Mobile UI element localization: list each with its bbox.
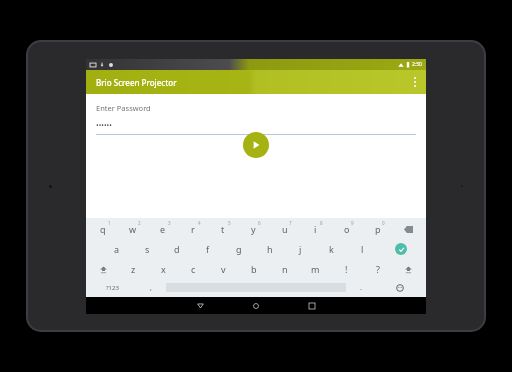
staticText: !	[345, 263, 348, 275]
staticText: a	[114, 243, 120, 255]
staticText: 9	[351, 220, 354, 226]
button[interactable]: ?123	[88, 279, 136, 296]
staticText: 3	[168, 220, 171, 226]
staticText: .	[360, 283, 362, 293]
staticText: f	[206, 243, 210, 255]
staticText: ?123	[106, 284, 119, 292]
staticText: u	[282, 223, 288, 235]
staticText: ,	[150, 283, 152, 293]
button[interactable]: Back	[172, 297, 228, 314]
button[interactable]: f	[192, 239, 223, 259]
staticText: d	[174, 243, 180, 255]
button[interactable]: s	[132, 239, 162, 259]
staticText: 2:50	[412, 61, 422, 68]
button[interactable]: o	[331, 219, 362, 239]
button[interactable]: ?	[362, 259, 393, 279]
button[interactable]: l	[347, 239, 378, 259]
button[interactable]: v	[208, 259, 238, 279]
staticText: b	[251, 263, 257, 275]
button[interactable]: More options	[404, 70, 426, 94]
button[interactable]: ,	[136, 279, 166, 296]
button[interactable]: Shift	[393, 259, 424, 279]
staticText: n	[282, 263, 288, 275]
staticText: l	[361, 243, 364, 255]
staticText: m	[311, 263, 320, 275]
staticText: Enter Password	[96, 103, 151, 113]
button[interactable]: Emoji	[376, 279, 424, 296]
staticText: r	[191, 223, 195, 235]
button[interactable]: b	[238, 259, 269, 279]
staticText: j	[299, 243, 302, 255]
staticText: k	[329, 243, 334, 255]
staticText: y	[251, 223, 256, 235]
button[interactable]: r	[178, 219, 208, 239]
button[interactable]: j	[285, 239, 316, 259]
staticText: 8	[320, 220, 323, 226]
button[interactable]: m	[300, 259, 331, 279]
staticText: e	[160, 223, 166, 235]
staticText: t	[221, 223, 225, 235]
staticText: 1	[108, 220, 111, 226]
staticText: q	[100, 223, 106, 235]
button[interactable]: p	[362, 219, 393, 239]
button[interactable]: u	[269, 219, 300, 239]
staticText: ••••••	[96, 121, 112, 131]
button[interactable]: w	[118, 219, 148, 239]
staticText: 2	[138, 220, 141, 226]
staticText: 5	[228, 220, 231, 226]
staticText: Brio Screen Projector	[96, 77, 177, 88]
staticText: v	[221, 263, 226, 275]
button[interactable]: a	[102, 239, 132, 259]
staticText: ?	[376, 263, 380, 275]
button[interactable]: d	[162, 239, 192, 259]
staticText: x	[161, 263, 166, 275]
button[interactable]: Home	[228, 297, 284, 314]
button[interactable]: x	[148, 259, 178, 279]
button[interactable]: t	[208, 219, 238, 239]
button[interactable]: c	[178, 259, 208, 279]
staticText: s	[145, 243, 150, 255]
staticText: 7	[289, 220, 292, 226]
button[interactable]: i	[300, 219, 331, 239]
button[interactable]: ••••••	[96, 121, 416, 131]
button[interactable]: e	[148, 219, 178, 239]
button[interactable]: q	[88, 219, 118, 239]
button[interactable]: Recent apps	[284, 297, 340, 314]
staticText: 4	[198, 220, 201, 226]
staticText: g	[236, 243, 242, 255]
staticText: w	[129, 223, 137, 235]
staticText: z	[131, 263, 136, 275]
button[interactable]: Shift	[88, 259, 118, 279]
button[interactable]: Enter	[378, 239, 424, 259]
button[interactable]: Start projection	[243, 132, 269, 158]
staticText: i	[314, 223, 317, 235]
staticText: 0	[382, 220, 385, 226]
button[interactable]: k	[316, 239, 347, 259]
button[interactable]: z	[118, 259, 148, 279]
button[interactable]: y	[238, 219, 269, 239]
staticText: 6	[258, 220, 261, 226]
staticText: p	[375, 223, 381, 235]
button[interactable]: Backspace	[393, 219, 424, 239]
button[interactable]: g	[223, 239, 254, 259]
staticText: h	[267, 243, 273, 255]
staticText: c	[191, 263, 196, 275]
button[interactable]: n	[269, 259, 300, 279]
button[interactable]: h	[254, 239, 285, 259]
button[interactable]: !	[331, 259, 362, 279]
staticText: o	[344, 223, 350, 235]
